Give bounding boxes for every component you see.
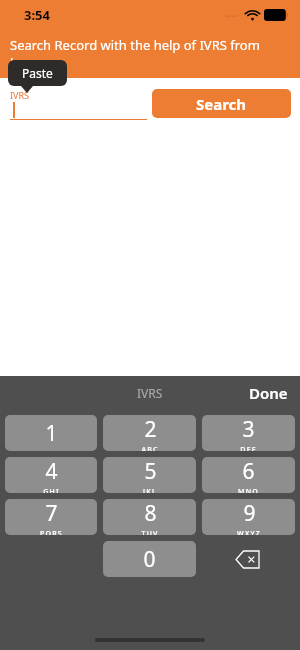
staticText: 4 (45, 457, 58, 486)
staticText: WXYZ (237, 529, 261, 535)
staticText: Paste (22, 65, 53, 81)
button[interactable]: 5 (103, 457, 196, 493)
button[interactable]: 7 (5, 499, 97, 535)
staticText: 7 (45, 499, 58, 528)
staticText: PQRS (40, 529, 63, 535)
staticText: ABC (141, 445, 159, 451)
staticText: 1 (45, 419, 58, 448)
staticText: 9 (243, 499, 256, 528)
button[interactable]: Search (152, 89, 291, 118)
button[interactable]: 4 (5, 457, 97, 493)
button[interactable]: 3 (202, 415, 295, 451)
button[interactable]: Backspace (202, 541, 295, 577)
staticText: IVRS (10, 89, 29, 101)
staticText: IVRS (137, 385, 163, 401)
staticText: JKL (143, 487, 157, 493)
staticText: GHI (43, 487, 60, 493)
button[interactable]: 1 (5, 415, 97, 451)
staticText: 0 (143, 545, 156, 574)
staticText: Done (249, 383, 288, 403)
staticText: Search Record with the help of IVRS from… (10, 36, 300, 72)
staticText: 8 (144, 499, 157, 528)
button[interactable]: IVRS (10, 89, 147, 120)
staticText: 3:54 (24, 6, 50, 24)
staticText: 3 (242, 415, 255, 444)
button[interactable]: 2 (103, 415, 196, 451)
staticText: DEF (240, 445, 257, 451)
staticText: 6 (242, 457, 255, 486)
button[interactable]: 0 (103, 541, 196, 577)
staticText: MNO (238, 487, 259, 493)
button[interactable]: Paste (8, 60, 67, 86)
staticText: 5 (144, 457, 157, 486)
button[interactable]: 9 (202, 499, 295, 535)
button[interactable]: 6 (202, 457, 295, 493)
staticText: Search (196, 94, 247, 114)
staticText: TUV (141, 529, 159, 535)
staticText: 2 (144, 415, 157, 444)
button[interactable]: 8 (103, 499, 196, 535)
button[interactable]: Done (245, 381, 292, 405)
